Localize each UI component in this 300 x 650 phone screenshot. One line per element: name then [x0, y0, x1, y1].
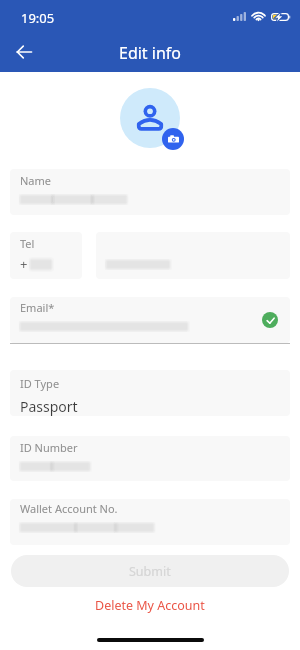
button[interactable]: Submit [11, 555, 289, 587]
button[interactable]: ID Type [10, 370, 290, 416]
button[interactable]: Tel [10, 232, 82, 279]
staticText: + [20, 255, 28, 273]
staticText: 19:05 [21, 9, 55, 27]
button[interactable]: Change photo [162, 128, 184, 150]
staticText: Edit info [119, 42, 182, 64]
staticText: Passport [20, 397, 78, 416]
button[interactable]: Back [8, 36, 40, 68]
staticText: Wallet Account No. [20, 501, 118, 516]
button[interactable]: Email* [10, 297, 290, 343]
staticText: ID Type [20, 376, 60, 391]
button[interactable]: ID Number [10, 436, 290, 481]
button[interactable] [96, 232, 290, 279]
staticText: ID Number [20, 440, 78, 455]
button[interactable]: Delete My Account [87, 593, 213, 618]
staticText: Tel [20, 236, 35, 251]
button[interactable]: Wallet Account No. [10, 499, 290, 545]
staticText: Name [20, 173, 52, 188]
button[interactable]: Name [10, 169, 290, 215]
staticText: Submit [129, 563, 171, 580]
button[interactable]: Profile photo [120, 88, 180, 148]
staticText: Email* [20, 300, 55, 315]
